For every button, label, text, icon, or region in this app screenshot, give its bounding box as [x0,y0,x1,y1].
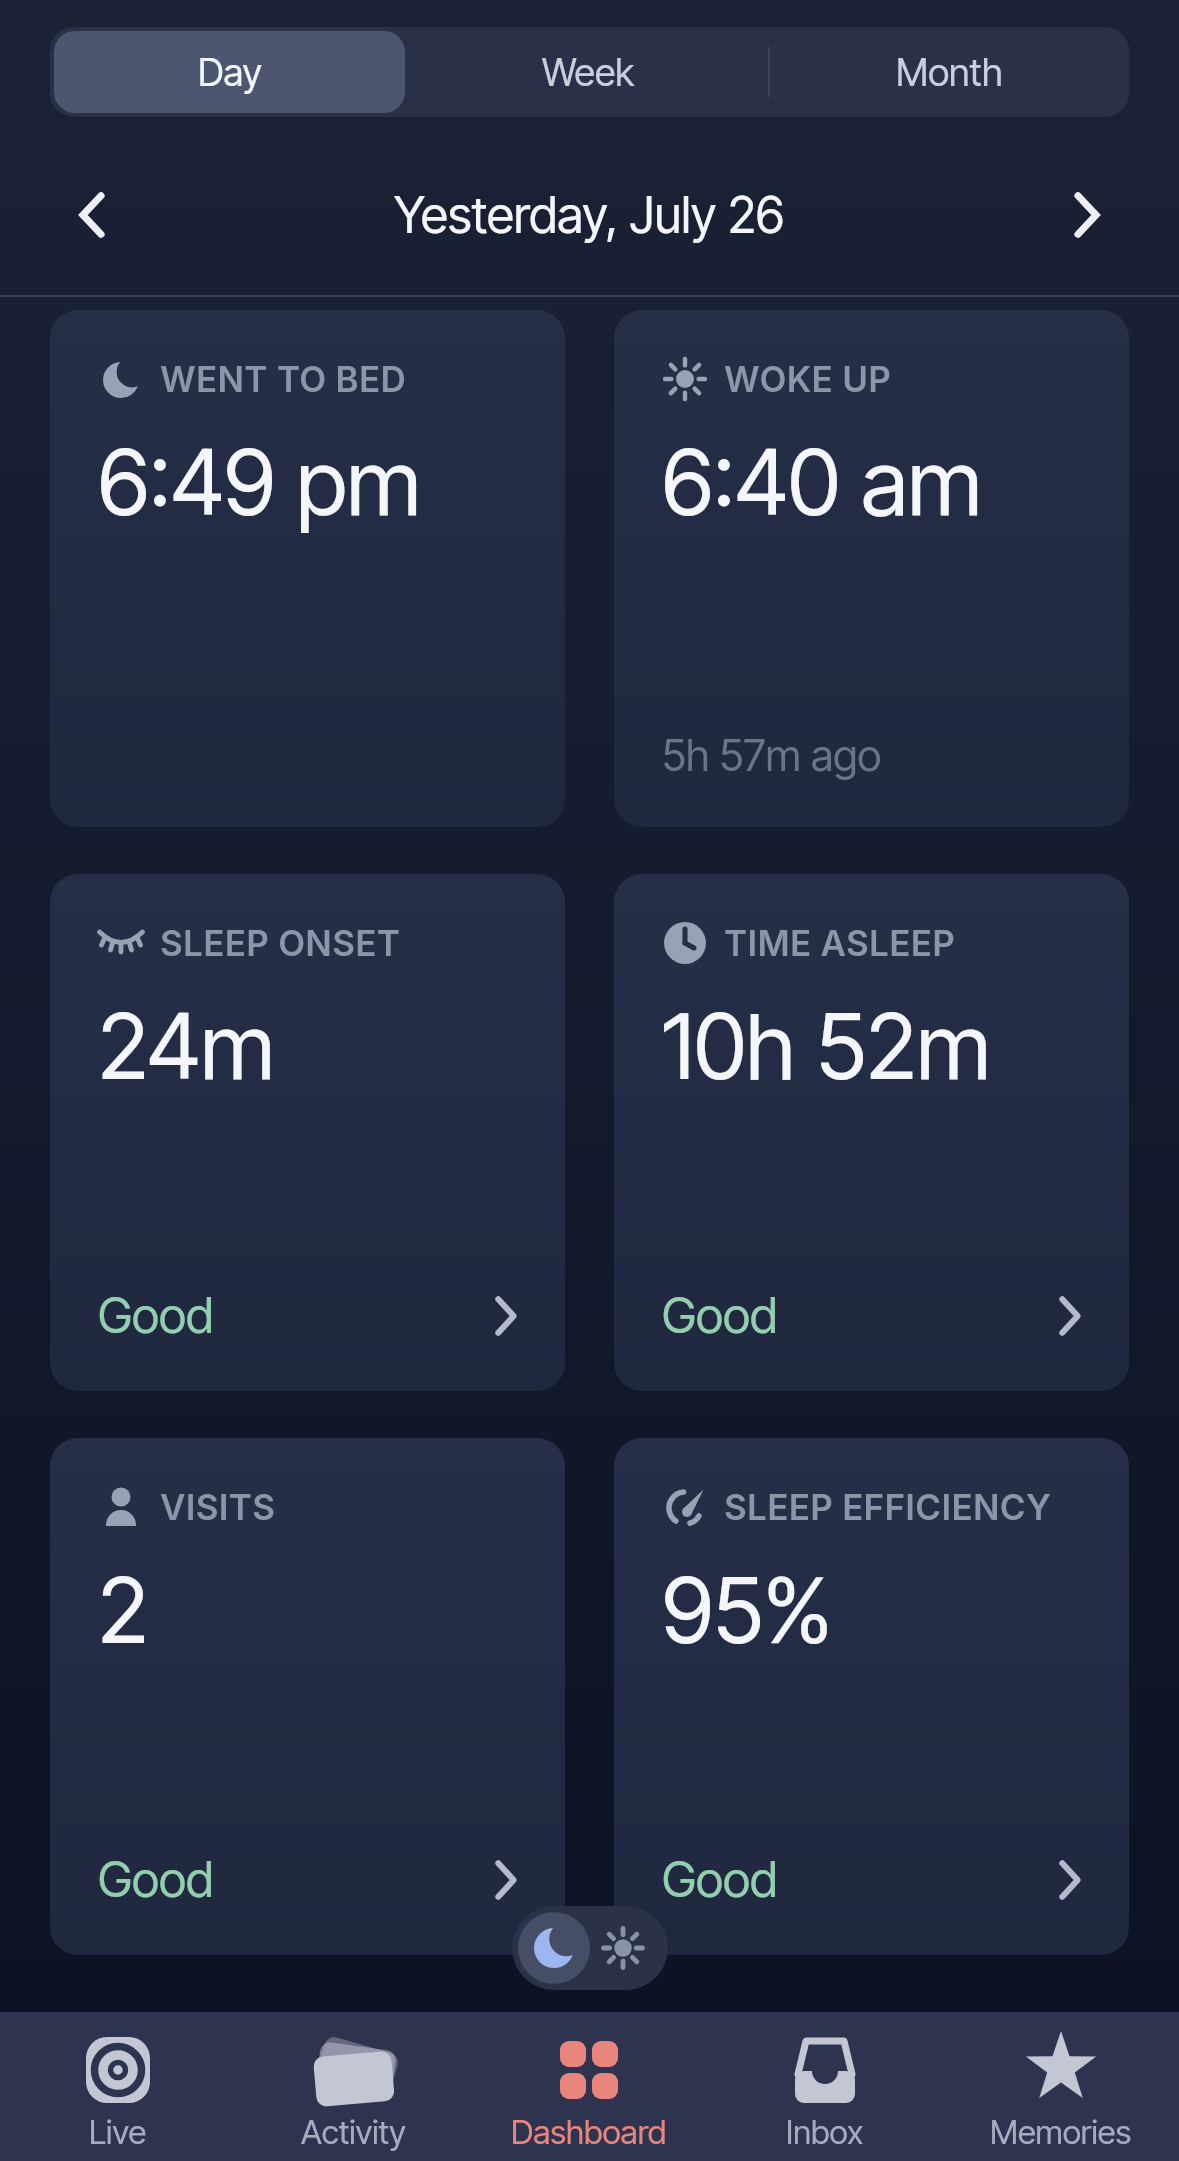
staticText: Good [98,1850,214,1909]
staticText: Activity [301,2112,406,2152]
staticText: Memories [990,2112,1132,2152]
button[interactable]: SLEEP ONSET [50,874,565,1391]
button[interactable] [1057,185,1117,245]
button[interactable] [62,185,122,245]
staticText: Yesterday, July 26 [394,185,785,245]
staticText: TIME ASLEEP [724,922,956,964]
staticText: Inbox [786,2112,864,2152]
staticText: Week [542,49,635,95]
button[interactable]: WOKE UP [614,310,1129,827]
button[interactable]: TIME ASLEEP [614,874,1129,1391]
staticText: 2 [98,1556,149,1665]
staticText: 6:49 pm [98,428,421,537]
button[interactable]: Inbox [707,2012,943,2161]
staticText: Good [662,1850,778,1909]
button[interactable] [512,1906,668,1990]
staticText: 10h 52m [662,992,991,1101]
staticText: Live [89,2112,147,2152]
staticText: Dashboard [511,2112,667,2152]
staticText: 24m [98,992,275,1101]
staticText: Good [98,1286,214,1345]
staticText: SLEEP ONSET [160,922,401,964]
staticText: Good [662,1286,778,1345]
button[interactable]: Live [0,2012,235,2161]
button[interactable]: Week [409,27,768,117]
staticText: SLEEP EFFICIENCY [724,1486,1052,1528]
staticText: VISITS [160,1486,276,1528]
staticText: WOKE UP [724,358,892,400]
staticText: 95% [662,1556,833,1665]
button[interactable]: Dashboard [471,2012,707,2161]
button[interactable]: Day [54,31,405,113]
button[interactable]: Month [770,27,1129,117]
button[interactable]: SLEEP EFFICIENCY [614,1438,1129,1955]
staticText: Month [896,49,1003,95]
staticText: Day [198,49,262,95]
staticText: 6:40 am [662,428,982,537]
staticText: WENT TO BED [160,358,406,400]
button[interactable]: VISITS [50,1438,565,1955]
button[interactable]: Activity [235,2012,471,2161]
button[interactable]: WENT TO BED [50,310,565,827]
staticText: 5h 57m ago [662,729,882,781]
button[interactable]: Memories [943,2012,1179,2161]
